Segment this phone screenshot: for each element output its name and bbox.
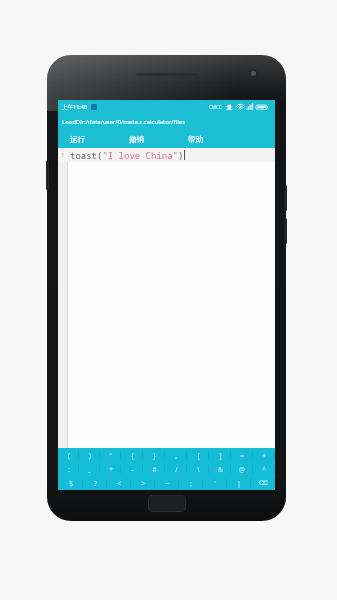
staticText: @ xyxy=(239,465,245,474)
button[interactable]: Key { xyxy=(121,448,143,462)
staticText: \ xyxy=(197,465,200,474)
button[interactable]: Key ? xyxy=(83,476,107,490)
staticText: _ xyxy=(88,465,91,474)
button[interactable]: 帮助 xyxy=(184,134,207,145)
staticText: [ xyxy=(197,451,200,460)
staticText: | xyxy=(237,479,241,488)
button[interactable]: Key * xyxy=(100,462,121,476)
staticText: # xyxy=(152,465,157,474)
button[interactable]: Key $ xyxy=(58,476,83,490)
staticText: 撤销 xyxy=(129,135,144,144)
staticText: = xyxy=(240,451,244,460)
button[interactable]: Key ] xyxy=(209,448,231,462)
staticText: { xyxy=(131,451,134,460)
staticText: ) xyxy=(89,451,91,460)
staticText: / xyxy=(175,465,178,474)
staticText: ~ xyxy=(165,479,169,488)
staticText: ] xyxy=(219,451,222,460)
button[interactable]: Home xyxy=(148,495,186,512)
button[interactable]: 运行 xyxy=(66,134,89,145)
button[interactable]: Key ; xyxy=(179,476,203,490)
staticText: & xyxy=(218,465,223,474)
staticText: 1 xyxy=(61,151,65,159)
button[interactable]: Key ) xyxy=(79,448,100,462)
button[interactable]: Key / xyxy=(165,462,187,476)
button[interactable]: Key _ xyxy=(79,462,100,476)
button[interactable]: Key \ xyxy=(187,462,209,476)
button[interactable]: Key > xyxy=(131,476,155,490)
staticText: toast("I love China") xyxy=(70,149,184,161)
staticText: ? xyxy=(94,479,97,488)
button[interactable]: Key ⌫ xyxy=(251,476,275,490)
staticText: 帮助 xyxy=(188,135,203,144)
button[interactable]: Key ' xyxy=(203,476,227,490)
button[interactable]: Key | xyxy=(227,476,251,490)
staticText: , xyxy=(175,451,177,460)
button[interactable]: Key # xyxy=(143,462,165,476)
staticText: ^ xyxy=(262,465,266,474)
button[interactable]: Key = xyxy=(231,448,253,462)
staticText: 上午11:46 xyxy=(62,103,88,111)
button[interactable]: Key @ xyxy=(231,462,253,476)
staticText: : xyxy=(68,465,70,474)
button[interactable]: 撤销 xyxy=(125,134,148,145)
staticText: ( xyxy=(68,451,70,460)
staticText: CMCC xyxy=(209,104,222,110)
button[interactable]: Key : xyxy=(58,462,79,476)
staticText: ' xyxy=(214,479,216,488)
staticText: ; xyxy=(190,479,192,488)
staticText: + xyxy=(262,451,266,460)
staticText: 运行 xyxy=(70,135,85,144)
staticText: > xyxy=(141,479,145,488)
staticText: $ xyxy=(69,479,73,488)
staticText: ⌫ xyxy=(258,479,268,487)
staticText: - xyxy=(131,465,134,474)
staticText: LoadDir:/data/user/0/meta.z.calculator/f… xyxy=(62,118,186,126)
button[interactable]: Key [ xyxy=(187,448,209,462)
button[interactable]: Key ~ xyxy=(155,476,179,490)
button[interactable]: Key & xyxy=(209,462,231,476)
staticText: } xyxy=(153,451,156,460)
button[interactable]: Key ^ xyxy=(253,462,275,476)
button[interactable]: Key ( xyxy=(58,448,79,462)
button[interactable]: Key " xyxy=(100,448,121,462)
staticText: " xyxy=(109,451,112,460)
button[interactable]: Key + xyxy=(253,448,275,462)
staticText: * xyxy=(109,465,113,474)
button[interactable]: Key < xyxy=(107,476,131,490)
button[interactable]: Key , xyxy=(165,448,187,462)
button[interactable]: Key - xyxy=(121,462,143,476)
staticText: < xyxy=(117,479,121,488)
button[interactable]: Key } xyxy=(143,448,165,462)
